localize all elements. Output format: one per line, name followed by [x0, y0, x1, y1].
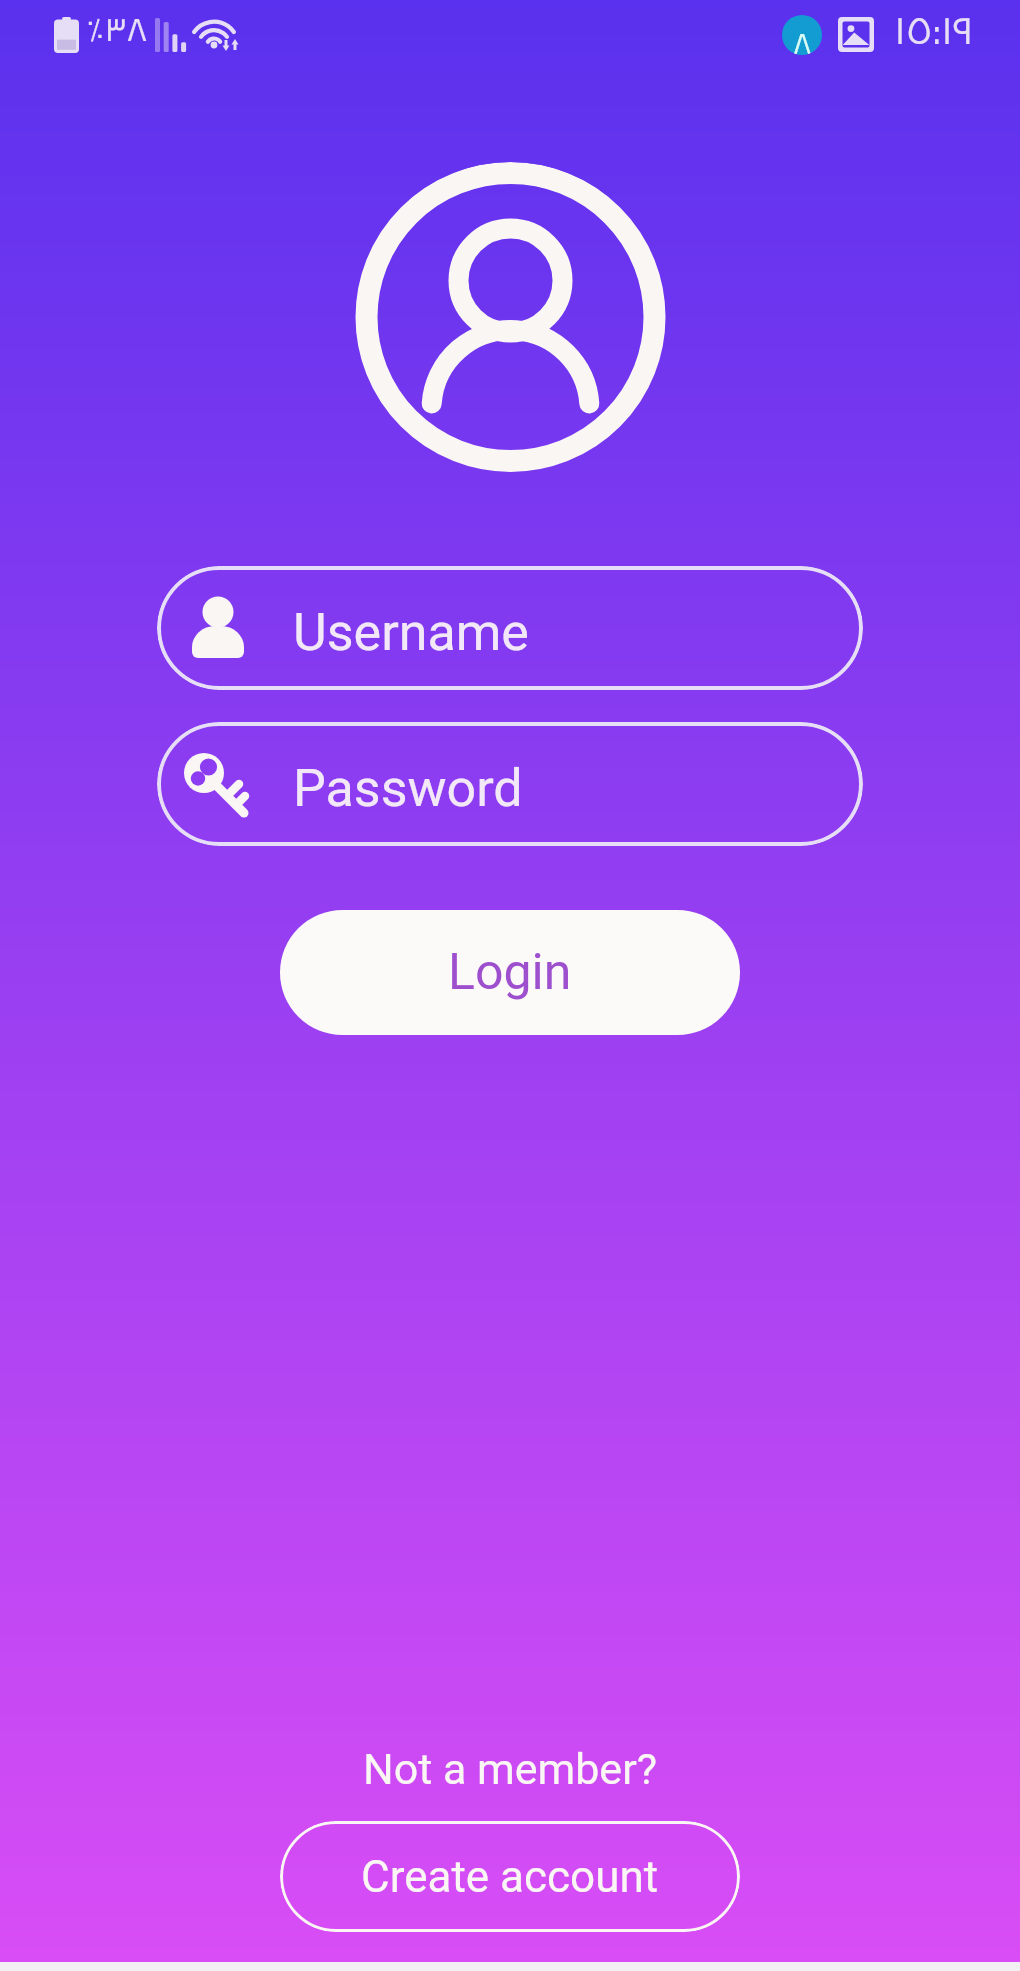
button[interactable]: Username: [157, 566, 863, 690]
staticText: Login: [448, 943, 572, 1002]
button[interactable]: Profile picture: [353, 162, 668, 477]
button[interactable]: Password: [157, 722, 863, 846]
button[interactable]: Create account: [280, 1821, 740, 1932]
button[interactable]: Login: [280, 910, 740, 1035]
staticText: Create account: [361, 1851, 659, 1903]
staticText: Username: [293, 602, 529, 663]
staticText: ٨: [793, 15, 812, 55]
staticText: Password: [293, 758, 523, 819]
staticText: Not a member?: [363, 1744, 658, 1794]
staticText: ١٥:١٩: [894, 0, 974, 66]
staticText: ٪٣٨: [86, 0, 148, 60]
